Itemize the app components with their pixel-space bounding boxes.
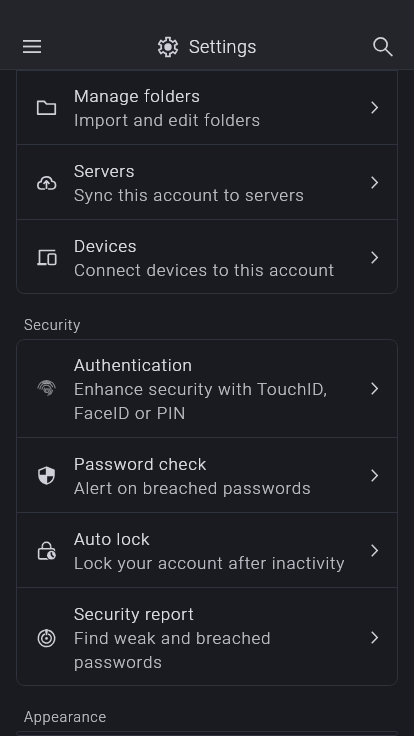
button[interactable]: Servers [16, 145, 398, 219]
staticText: Settings [189, 36, 257, 57]
button[interactable]: Manage folders [16, 70, 398, 144]
button[interactable]: Password check [16, 438, 398, 512]
staticText: Devices [74, 233, 138, 257]
staticText: Alert on breached passwords [74, 475, 312, 499]
staticText: Lock your account after inactivity [74, 550, 346, 574]
staticText: Appearance [24, 706, 107, 726]
staticText: Security [24, 314, 81, 334]
staticText: Authentication [74, 352, 193, 376]
button[interactable]: Search [360, 24, 404, 68]
staticText: Enhance security with TouchID, FaceID or… [74, 376, 350, 424]
staticText: Import and edit folders [74, 107, 261, 131]
staticText: Password check [74, 451, 207, 475]
button[interactable]: Security report [16, 588, 398, 686]
staticText: Connect devices to this account [74, 257, 335, 281]
button[interactable]: Theme [16, 731, 398, 736]
button[interactable]: Menu [10, 24, 54, 68]
button[interactable]: Auto lock [16, 513, 398, 587]
staticText: Manage folders [74, 83, 201, 107]
staticText: Find weak and breached passwords [74, 625, 350, 673]
button[interactable]: Authentication [16, 339, 398, 437]
staticText: Auto lock [74, 526, 151, 550]
button[interactable]: Devices [16, 220, 398, 294]
staticText: Sync this account to servers [74, 182, 305, 206]
staticText: Security report [74, 601, 195, 625]
staticText: Servers [74, 158, 136, 182]
